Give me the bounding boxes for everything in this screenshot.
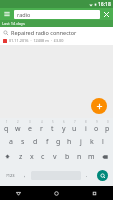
button[interactable]: 2: [12, 119, 24, 134]
button[interactable]: Back: [0, 186, 37, 200]
button[interactable]: k: [86, 134, 97, 149]
button[interactable]: 9: [91, 119, 102, 134]
staticText: s: [21, 137, 25, 147]
staticText: Repaired radio connector: [11, 29, 77, 36]
button[interactable]: 3: [24, 119, 36, 134]
staticText: 6: [63, 120, 65, 124]
staticText: b: [65, 152, 70, 162]
button[interactable]: d: [29, 134, 41, 149]
button[interactable]: Recents: [75, 186, 113, 200]
button[interactable]: ?123: [0, 164, 20, 186]
button[interactable]: .: [82, 164, 92, 186]
button[interactable]: 0: [102, 119, 113, 134]
staticText: 9: [96, 120, 98, 124]
staticText: 3: [29, 120, 31, 124]
staticText: c: [41, 152, 45, 162]
button[interactable]: x: [26, 149, 37, 164]
button[interactable]: s: [17, 134, 29, 149]
button[interactable]: j: [75, 134, 86, 149]
button[interactable]: 6: [58, 119, 69, 134]
staticText: k: [90, 137, 94, 147]
staticText: 4: [41, 120, 43, 124]
staticText: .: [86, 172, 88, 179]
staticText: r: [40, 124, 43, 134]
staticText: 16:18: [98, 1, 111, 8]
staticText: v: [53, 152, 57, 162]
staticText: w: [15, 124, 21, 134]
staticText: f: [46, 137, 49, 147]
button[interactable]: Backspace: [97, 149, 113, 164]
staticText: x: [30, 152, 34, 162]
staticText: g: [56, 137, 61, 147]
button[interactable]: Add entry: [91, 98, 107, 114]
button[interactable]: v: [49, 149, 61, 164]
button[interactable]: c: [37, 149, 49, 164]
staticText: 2: [17, 120, 19, 124]
staticText: ?123: [6, 173, 15, 178]
button[interactable]: radio: [14, 10, 100, 19]
staticText: i: [85, 124, 87, 134]
staticText: 0: [107, 120, 109, 124]
button[interactable]: f: [41, 134, 53, 149]
staticText: h: [67, 137, 72, 147]
button[interactable]: Open navigation menu: [2, 9, 12, 19]
staticText: t: [51, 124, 54, 134]
staticText: radio: [17, 11, 31, 18]
button[interactable]: 5: [47, 119, 58, 134]
button[interactable]: 8: [80, 119, 91, 134]
staticText: 7: [74, 120, 76, 124]
staticText: j: [80, 137, 82, 147]
staticText: u: [72, 124, 77, 134]
button[interactable]: b: [61, 149, 73, 164]
staticText: Last 14 days: [2, 21, 26, 26]
staticText: p: [105, 124, 110, 134]
staticText: q: [4, 124, 9, 134]
staticText: 8: [85, 120, 87, 124]
staticText: l: [102, 137, 104, 147]
button[interactable]: Clear search: [101, 9, 111, 19]
staticText: ,: [24, 172, 26, 179]
staticText: o: [94, 124, 99, 134]
staticText: a: [9, 137, 13, 147]
button[interactable]: 7: [69, 119, 80, 134]
button[interactable]: l: [97, 134, 108, 149]
button[interactable]: 1: [0, 119, 12, 134]
button[interactable]: h: [64, 134, 75, 149]
staticText: 01.11.2016 · 12408 m · £3.00: [9, 38, 64, 43]
button[interactable]: 4: [36, 119, 47, 134]
staticText: m: [88, 152, 95, 162]
button[interactable]: m: [85, 149, 97, 164]
button[interactable]: n: [73, 149, 85, 164]
button[interactable]: Repaired radio connector: [0, 27, 113, 45]
button[interactable]: a: [5, 134, 17, 149]
staticText: d: [33, 137, 38, 147]
staticText: n: [77, 152, 82, 162]
button[interactable]: g: [53, 134, 64, 149]
button[interactable]: Home: [37, 186, 75, 200]
staticText: y: [62, 124, 66, 134]
staticText: z: [19, 152, 23, 162]
button[interactable]: Shift: [0, 149, 15, 164]
staticText: 5: [52, 120, 54, 124]
staticText: e: [28, 124, 32, 134]
button[interactable]: ,: [20, 164, 30, 186]
button[interactable]: Search: [97, 170, 108, 181]
staticText: 1: [6, 120, 8, 124]
button[interactable]: z: [15, 149, 26, 164]
